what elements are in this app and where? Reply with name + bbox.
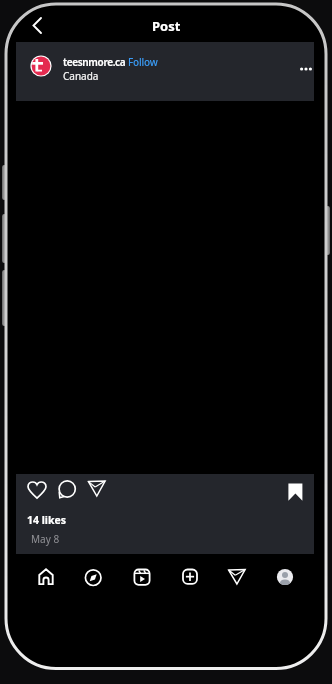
button[interactable] xyxy=(86,477,108,499)
button[interactable] xyxy=(130,565,154,589)
button[interactable] xyxy=(26,479,48,499)
button[interactable] xyxy=(273,565,297,589)
button[interactable]: Follow xyxy=(128,55,158,69)
button[interactable] xyxy=(56,478,78,500)
button[interactable] xyxy=(81,565,105,589)
button[interactable] xyxy=(225,565,249,589)
button[interactable] xyxy=(284,479,304,501)
button[interactable] xyxy=(178,565,202,589)
button[interactable] xyxy=(34,565,58,589)
staticText: teesnmore.ca xyxy=(63,55,126,69)
staticText: May 8 xyxy=(31,532,60,546)
staticText: 14 likes xyxy=(27,513,67,527)
staticText: Post xyxy=(152,17,181,35)
staticText: Canada xyxy=(63,69,99,83)
button[interactable] xyxy=(26,16,50,38)
button[interactable]: teesnmore.ca xyxy=(16,42,314,101)
button[interactable] xyxy=(284,58,324,84)
